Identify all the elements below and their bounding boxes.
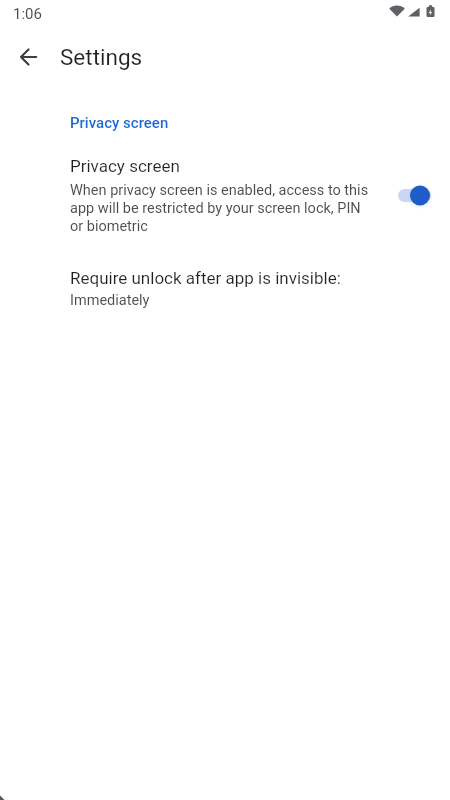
staticText: Privacy screen (70, 114, 169, 132)
button[interactable] (394, 179, 438, 211)
button[interactable]: Privacy screen (0, 146, 450, 248)
staticText: Immediately (70, 292, 150, 309)
staticText: 1:06 (13, 5, 42, 23)
button[interactable]: Require unlock after app is invisible: (0, 254, 450, 318)
staticText: When privacy screen is enabled, access t… (70, 182, 369, 234)
button[interactable] (5, 33, 53, 81)
staticText: Settings (60, 44, 143, 70)
staticText: Require unlock after app is invisible: (70, 268, 341, 288)
staticText: Privacy screen (70, 156, 180, 176)
